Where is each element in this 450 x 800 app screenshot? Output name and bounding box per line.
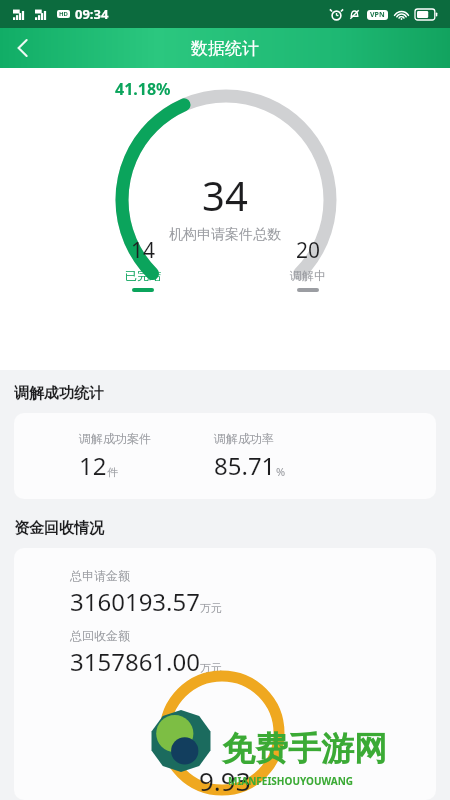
staticText: 12: [79, 449, 107, 482]
staticText: 20: [296, 236, 321, 265]
staticText: 14: [131, 236, 156, 265]
staticText: 3157861.00: [70, 645, 200, 678]
staticText: 调解成功统计: [14, 384, 104, 403]
staticText: 调解中: [290, 268, 326, 283]
staticText: 9.93: [199, 763, 251, 798]
button[interactable]: 调解成功案件: [14, 413, 436, 499]
staticText: 调解成功案件: [79, 431, 151, 446]
staticText: 09:34: [75, 5, 109, 23]
button[interactable]: 总申请金额: [14, 548, 436, 800]
staticText: 资金回收情况: [14, 519, 104, 538]
button[interactable]: 14: [108, 236, 178, 292]
button[interactable]: Back: [0, 28, 44, 68]
staticText: MIANFEISHOUYOUWANG: [228, 774, 354, 788]
staticText: 41.18%: [115, 78, 171, 100]
staticText: 3160193.57: [70, 585, 200, 618]
staticText: HD: [59, 10, 68, 18]
staticText: 总回收金额: [70, 628, 130, 643]
staticText: 数据统计: [191, 38, 259, 59]
staticText: 免费手游网: [222, 728, 387, 770]
staticText: 已完结: [125, 268, 161, 283]
staticText: 34: [202, 168, 248, 222]
staticText: 万元: [200, 601, 222, 615]
button[interactable]: 20: [273, 236, 343, 292]
staticText: 总申请金额: [70, 568, 130, 583]
staticText: VPN: [370, 10, 385, 20]
staticText: 机构申请案件总数: [169, 226, 281, 244]
staticText: 85.71: [214, 449, 276, 482]
staticText: 调解成功率: [214, 431, 274, 446]
staticText: %: [276, 464, 286, 479]
staticText: 件: [107, 465, 118, 479]
staticText: 万元: [200, 661, 222, 675]
